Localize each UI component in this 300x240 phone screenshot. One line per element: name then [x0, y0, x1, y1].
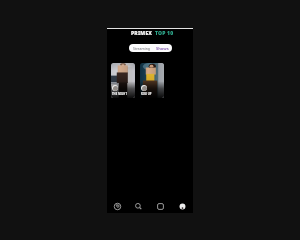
- button[interactable]: RISE UP: [140, 63, 164, 98]
- button[interactable]: THE NIGHT: [111, 63, 135, 98]
- staticText: RISE UP: [141, 92, 152, 96]
- button[interactable]: Streaming: [129, 44, 153, 52]
- staticText: Streaming: [133, 46, 150, 51]
- staticText: THE NIGHT: [112, 92, 127, 96]
- button[interactable]: Shows: [153, 44, 172, 52]
- staticText: PRIMEX: [131, 30, 153, 37]
- button[interactable]: Search: [128, 199, 149, 213]
- staticText: TOP 10: [155, 30, 174, 37]
- button[interactable]: Downloads: [149, 199, 171, 213]
- button[interactable]: Home: [107, 199, 128, 213]
- button[interactable]: Profile: [171, 199, 193, 213]
- staticText: Shows: [156, 46, 169, 51]
